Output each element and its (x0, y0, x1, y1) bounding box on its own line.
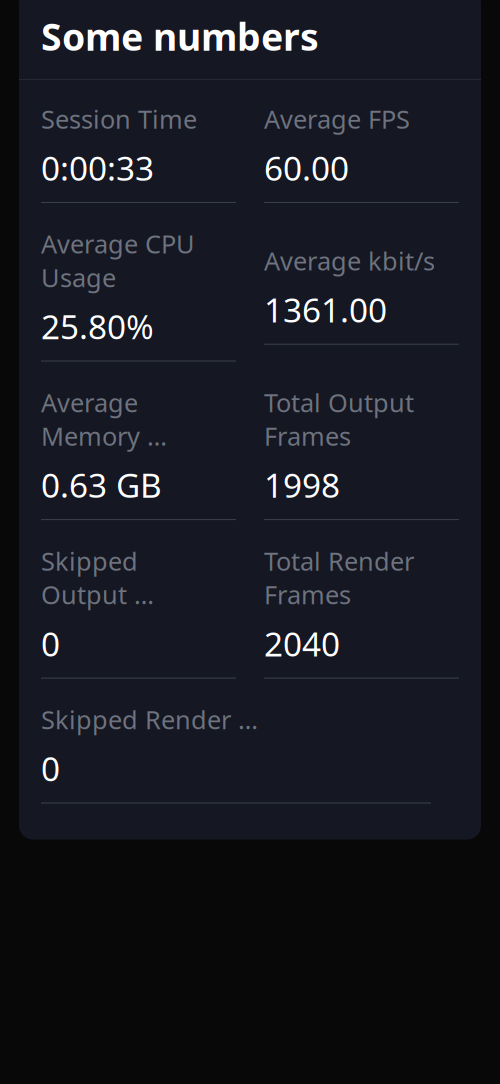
staticText: Skipped Render … (41, 703, 258, 736)
staticText: 1361.00 (264, 287, 387, 332)
staticText: Average kbit/s (264, 244, 435, 277)
staticText: Total Output Frames (264, 385, 414, 453)
staticText: Total Render Frames (264, 544, 414, 611)
staticText: Average Memory … (41, 385, 167, 453)
staticText: 60.00 (264, 146, 349, 190)
staticText: 0 (41, 621, 60, 666)
staticText: 0.63 GB (41, 463, 162, 507)
staticText: Average CPU Usage (41, 227, 195, 294)
staticText: 0:00:33 (41, 146, 154, 190)
staticText: 1998 (264, 463, 340, 507)
staticText: 2040 (264, 621, 340, 666)
staticText: Some numbers (41, 11, 319, 61)
staticText: Average FPS (264, 102, 410, 136)
staticText: 25.80% (41, 304, 154, 348)
staticText: 0 (41, 746, 60, 791)
staticText: Skipped Output … (41, 544, 154, 611)
staticText: Session Time (41, 102, 197, 136)
